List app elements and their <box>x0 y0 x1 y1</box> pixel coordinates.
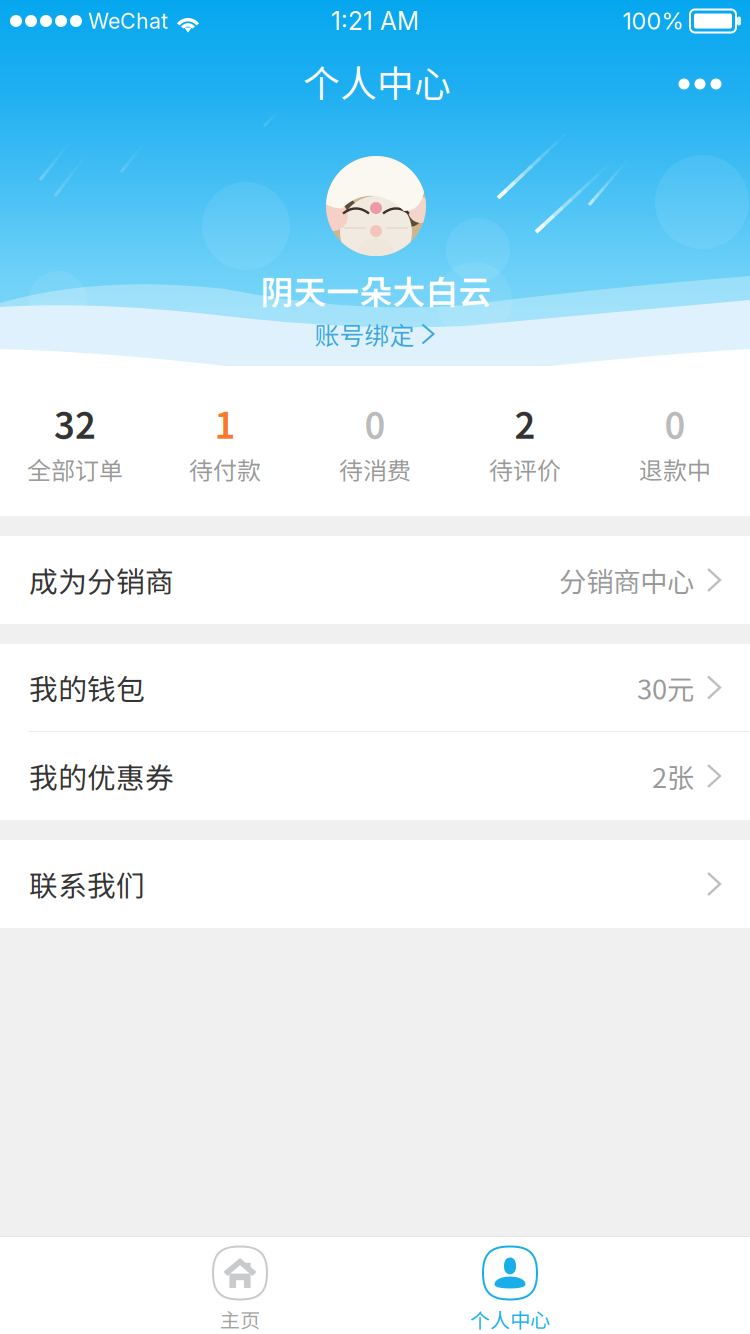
staticText: 待付款 <box>189 452 261 486</box>
staticText: 0 <box>364 397 385 449</box>
staticText: 我的钱包 <box>29 667 145 708</box>
button[interactable]: 账号绑定 <box>302 308 445 360</box>
button[interactable]: 1 <box>150 366 300 516</box>
button[interactable]: 我的优惠券 <box>0 732 750 820</box>
staticText: 主页 <box>220 1304 260 1333</box>
button[interactable]: 个人中心 <box>452 1237 568 1333</box>
button[interactable]: 主页 <box>182 1237 298 1333</box>
staticText: 联系我们 <box>29 863 145 905</box>
staticText: 2张 <box>652 756 694 796</box>
staticText: 我的优惠券 <box>29 755 174 797</box>
button[interactable]: 成为分销商 <box>0 536 750 624</box>
staticText: 成为分销商 <box>29 559 174 601</box>
button[interactable]: 联系我们 <box>0 840 750 928</box>
staticText: 2 <box>514 397 535 449</box>
staticText: 个人中心 <box>470 1304 550 1333</box>
staticText: 退款中 <box>639 452 711 486</box>
button[interactable]: More options <box>658 56 741 111</box>
staticText: 100% <box>622 7 683 35</box>
button[interactable]: 32 <box>0 366 150 516</box>
staticText: 全部订单 <box>27 452 123 486</box>
staticText: 30元 <box>637 668 694 707</box>
button[interactable]: 0 <box>300 366 450 516</box>
staticText: 0 <box>664 397 685 449</box>
staticText: 32 <box>54 397 96 449</box>
staticText: 阴天一朵大白云 <box>260 266 491 314</box>
button[interactable]: 2 <box>450 366 600 516</box>
staticText: WeChat <box>88 8 168 34</box>
staticText: 账号绑定 <box>314 316 414 352</box>
staticText: 1 <box>214 397 235 449</box>
staticText: 待评价 <box>489 452 561 486</box>
button[interactable]: 我的钱包 <box>0 644 750 732</box>
staticText: 待消费 <box>339 452 411 486</box>
staticText: 分销商中心 <box>559 560 694 600</box>
staticText: 1:21 AM <box>331 6 419 36</box>
button[interactable]: 0 <box>600 366 750 516</box>
staticText: 个人中心 <box>303 54 451 108</box>
